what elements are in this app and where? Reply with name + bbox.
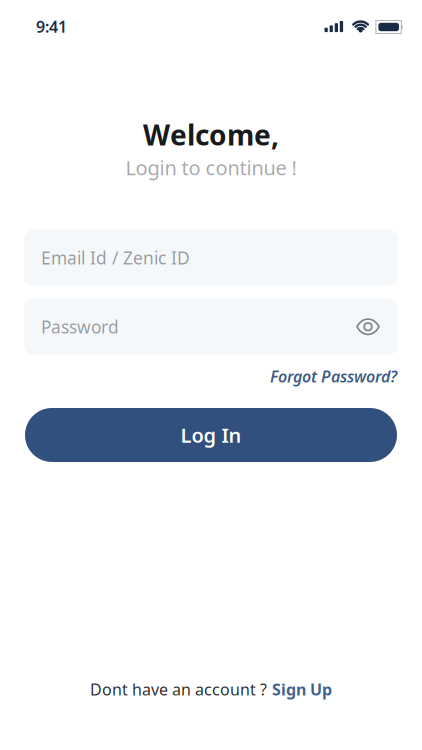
staticText: Email Id / Zenic ID xyxy=(41,246,190,269)
button[interactable]: Show password xyxy=(357,319,379,335)
staticText: 9:41 xyxy=(36,16,67,37)
staticText: Welcome, xyxy=(143,116,279,153)
staticText: Sign Up xyxy=(272,679,332,700)
button[interactable]: Sign Up xyxy=(272,679,332,700)
staticText: Dont have an account ? xyxy=(90,679,267,700)
button[interactable]: Password xyxy=(24,299,398,355)
staticText: Login to continue ! xyxy=(125,154,296,181)
button[interactable]: Log In xyxy=(25,408,397,462)
staticText: Log In xyxy=(180,422,241,448)
button[interactable]: Forgot Password? xyxy=(270,366,397,387)
button[interactable]: Email Id / Zenic ID xyxy=(24,230,398,286)
staticText: Password xyxy=(41,315,119,338)
staticText: Forgot Password? xyxy=(270,366,397,387)
